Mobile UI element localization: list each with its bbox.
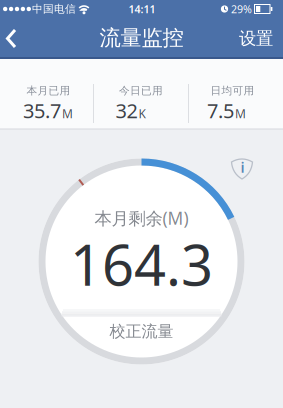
staticText: 本月已用 <box>26 84 70 97</box>
staticText: K <box>138 106 145 122</box>
staticText: 32 <box>115 97 137 124</box>
button[interactable]: 说明 <box>230 155 253 179</box>
staticText: 设置 <box>239 28 273 49</box>
staticText: 14:11 <box>128 2 155 16</box>
button[interactable]: 设置 <box>234 18 278 59</box>
staticText: M <box>235 106 246 122</box>
staticText: i <box>240 157 244 177</box>
staticText: M <box>62 106 73 122</box>
staticText: 35.7 <box>23 97 61 124</box>
staticText: 164.3 <box>70 227 213 301</box>
staticText: 本月剩余(M) <box>94 206 188 229</box>
staticText: 校正流量 <box>109 322 173 341</box>
button[interactable]: 返回 <box>0 18 24 59</box>
button[interactable]: 校正流量 <box>98 317 184 345</box>
staticText: 日均可用 <box>210 84 254 97</box>
staticText: 今日已用 <box>119 84 163 97</box>
staticText: 流量监控 <box>99 25 183 51</box>
staticText: 29% <box>231 2 252 16</box>
staticText: 7.5 <box>207 97 234 124</box>
staticText: 中国电信 <box>32 2 76 15</box>
